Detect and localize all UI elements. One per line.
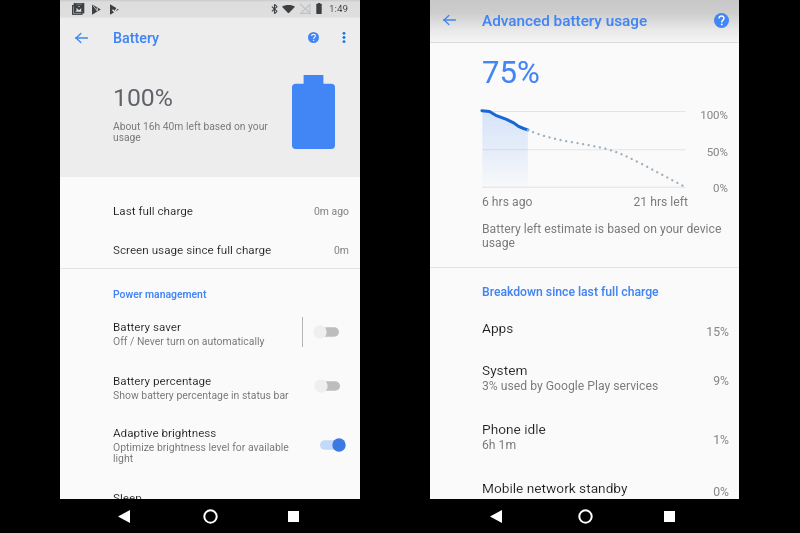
staticText: Off / Never turn on automatically bbox=[113, 335, 265, 347]
button[interactable]: Recents bbox=[276, 499, 310, 533]
staticText: 6 hrs ago bbox=[482, 195, 533, 209]
staticText: Battery saver bbox=[113, 320, 182, 334]
staticText: 1:49 bbox=[329, 3, 349, 15]
staticText: Show battery percentage in status bar bbox=[113, 389, 289, 401]
staticText: Advanced battery usage bbox=[482, 12, 648, 30]
button[interactable]: Last full charge bbox=[60, 191, 360, 230]
staticText: Mobile network standby bbox=[482, 480, 628, 496]
button[interactable]: Phone idle bbox=[430, 421, 739, 459]
staticText: 1% bbox=[713, 433, 729, 447]
button[interactable]: Navigate up bbox=[66, 23, 96, 53]
staticText: 100% bbox=[668, 108, 728, 121]
button[interactable]: Navigate up bbox=[434, 5, 464, 35]
staticText: 0% bbox=[713, 485, 729, 499]
staticText: Battery percentage bbox=[113, 374, 212, 388]
staticText: Optimize brightness level for available … bbox=[113, 441, 298, 464]
button[interactable]: Adaptive brightness bbox=[60, 424, 360, 468]
button[interactable]: On bbox=[320, 438, 339, 452]
staticText: 0% bbox=[668, 181, 728, 194]
staticText: 0m ago bbox=[314, 205, 349, 217]
staticText: Sleep bbox=[113, 491, 142, 505]
staticText: About 16h 40m left based on your usage bbox=[113, 120, 278, 143]
button[interactable]: Home bbox=[193, 499, 227, 533]
button[interactable]: Back bbox=[107, 499, 141, 533]
button[interactable]: System bbox=[430, 362, 739, 400]
staticText: Screen usage since full charge bbox=[113, 243, 272, 257]
staticText: Breakdown since last full charge bbox=[482, 285, 659, 299]
staticText: Apps bbox=[482, 320, 514, 336]
staticText: 0m bbox=[334, 244, 349, 256]
button[interactable]: Battery percentage bbox=[60, 372, 360, 416]
staticText: Power management bbox=[113, 288, 207, 300]
staticText: 100% bbox=[113, 83, 173, 112]
button[interactable]: Help bbox=[706, 5, 736, 35]
staticText: 15% bbox=[706, 325, 729, 339]
button[interactable]: Mobile network standby bbox=[430, 480, 739, 504]
staticText: Adaptive brightness bbox=[113, 426, 217, 440]
button[interactable]: Back bbox=[479, 499, 513, 533]
button[interactable]: Off bbox=[321, 379, 340, 393]
staticText: 50% bbox=[668, 145, 728, 158]
button[interactable]: Help bbox=[298, 22, 328, 52]
staticText: 6h 1m bbox=[482, 438, 517, 452]
button[interactable]: More options bbox=[329, 22, 359, 52]
button[interactable]: Apps bbox=[430, 320, 739, 344]
staticText: Battery bbox=[113, 30, 160, 47]
staticText: 75% bbox=[482, 54, 540, 90]
button[interactable]: Off bbox=[320, 325, 339, 339]
button[interactable]: Screen usage since full charge bbox=[60, 230, 360, 269]
button[interactable]: Recents bbox=[652, 499, 686, 533]
staticText: 3% used by Google Play services bbox=[482, 379, 659, 393]
button[interactable]: Home bbox=[568, 499, 602, 533]
staticText: 9% bbox=[713, 374, 729, 388]
button[interactable]: Battery saver bbox=[60, 318, 360, 362]
staticText: System bbox=[482, 362, 528, 378]
staticText: Last full charge bbox=[113, 204, 194, 218]
staticText: 21 hrs left bbox=[570, 195, 688, 209]
staticText: Battery left estimate is based on your d… bbox=[482, 222, 727, 250]
staticText: Phone idle bbox=[482, 421, 546, 437]
